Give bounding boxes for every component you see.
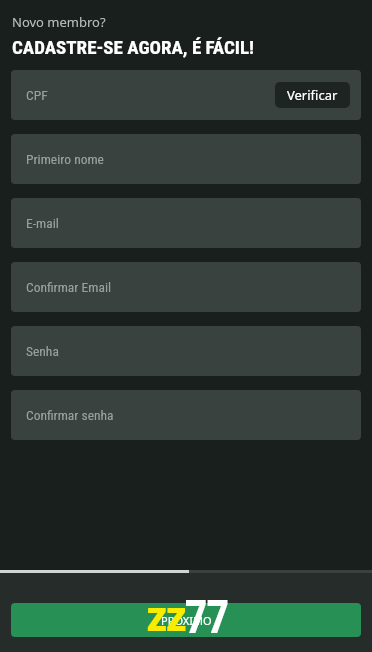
- button[interactable]: Verificar: [275, 82, 350, 108]
- button[interactable]: Senha: [11, 326, 361, 376]
- staticText: CPF: [26, 87, 48, 103]
- button[interactable]: Primeiro nome: [11, 134, 361, 184]
- staticText: Confirmar senha: [26, 407, 114, 423]
- button[interactable]: Confirmar senha: [11, 390, 361, 440]
- button[interactable]: E-mail: [11, 198, 361, 248]
- staticText: Verificar: [287, 86, 338, 104]
- staticText: E-mail: [26, 215, 59, 231]
- staticText: Senha: [26, 343, 59, 359]
- staticText: Primeiro nome: [26, 151, 104, 167]
- staticText: CADASTRE-SE AGORA, É FÁCIL!: [12, 36, 255, 58]
- staticText: ZZ: [147, 597, 187, 641]
- staticText: PRÓXIMO: [161, 613, 212, 628]
- button[interactable]: PRÓXIMO: [11, 603, 361, 637]
- staticText: 77: [185, 583, 229, 647]
- staticText: Novo membro?: [12, 13, 106, 31]
- button[interactable]: CPF: [11, 70, 361, 120]
- staticText: Confirmar Email: [26, 279, 112, 295]
- button[interactable]: Confirmar Email: [11, 262, 361, 312]
